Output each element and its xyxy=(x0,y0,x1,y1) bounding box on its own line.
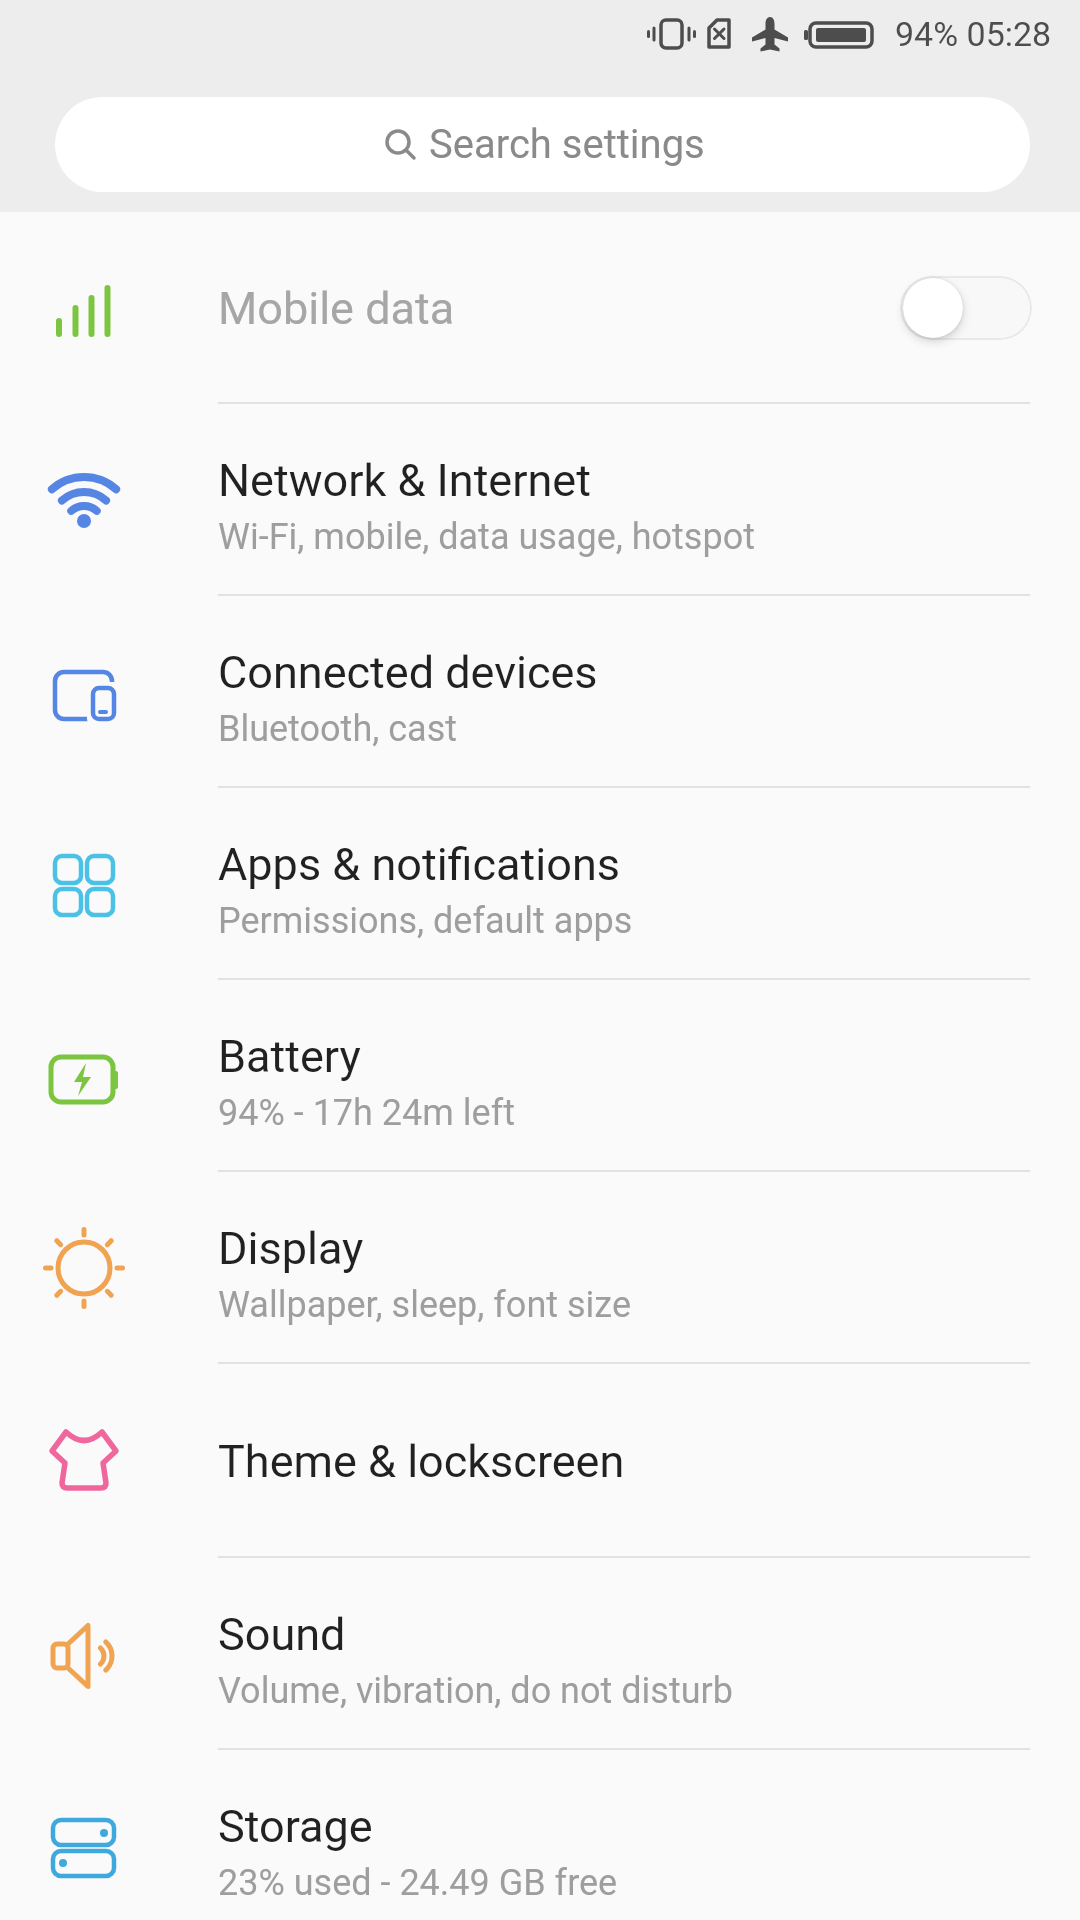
button[interactable]: Storage xyxy=(0,1750,1080,1920)
button[interactable] xyxy=(900,276,1032,340)
staticText: Apps & notifications xyxy=(218,838,620,891)
staticText: Search settings xyxy=(429,121,705,168)
staticText: Display xyxy=(218,1222,364,1275)
button[interactable] xyxy=(0,212,1080,404)
staticText: Theme & lockscreen xyxy=(218,1435,625,1488)
staticText: Wallpaper, sleep, font size xyxy=(218,1284,631,1326)
button[interactable]: Sound xyxy=(0,1558,1080,1750)
staticText: Sound xyxy=(218,1608,346,1661)
staticText: Permissions, default apps xyxy=(218,900,633,942)
staticText: 94% 05:28 xyxy=(895,14,1052,54)
button[interactable]: Connected devices xyxy=(0,596,1080,788)
button[interactable]: Display xyxy=(0,1172,1080,1364)
staticText: Network & Internet xyxy=(218,454,591,507)
button[interactable]: Battery xyxy=(0,980,1080,1172)
staticText: Storage xyxy=(218,1800,373,1853)
staticText: Volume, vibration, do not disturb xyxy=(218,1670,733,1712)
button[interactable]: Theme & lockscreen xyxy=(0,1364,1080,1558)
button[interactable]: Search settings xyxy=(55,97,1030,192)
staticText: 94% - 17h 24m left xyxy=(218,1092,515,1134)
staticText: Mobile data xyxy=(218,282,455,335)
staticText: Wi-Fi, mobile, data usage, hotspot xyxy=(218,516,755,558)
button[interactable]: Apps & notifications xyxy=(0,788,1080,980)
staticText: Battery xyxy=(218,1030,361,1083)
staticText: Bluetooth, cast xyxy=(218,708,458,750)
button[interactable]: Network & Internet xyxy=(0,404,1080,596)
staticText: Connected devices xyxy=(218,646,598,699)
staticText: 23% used - 24.49 GB free xyxy=(218,1862,618,1904)
